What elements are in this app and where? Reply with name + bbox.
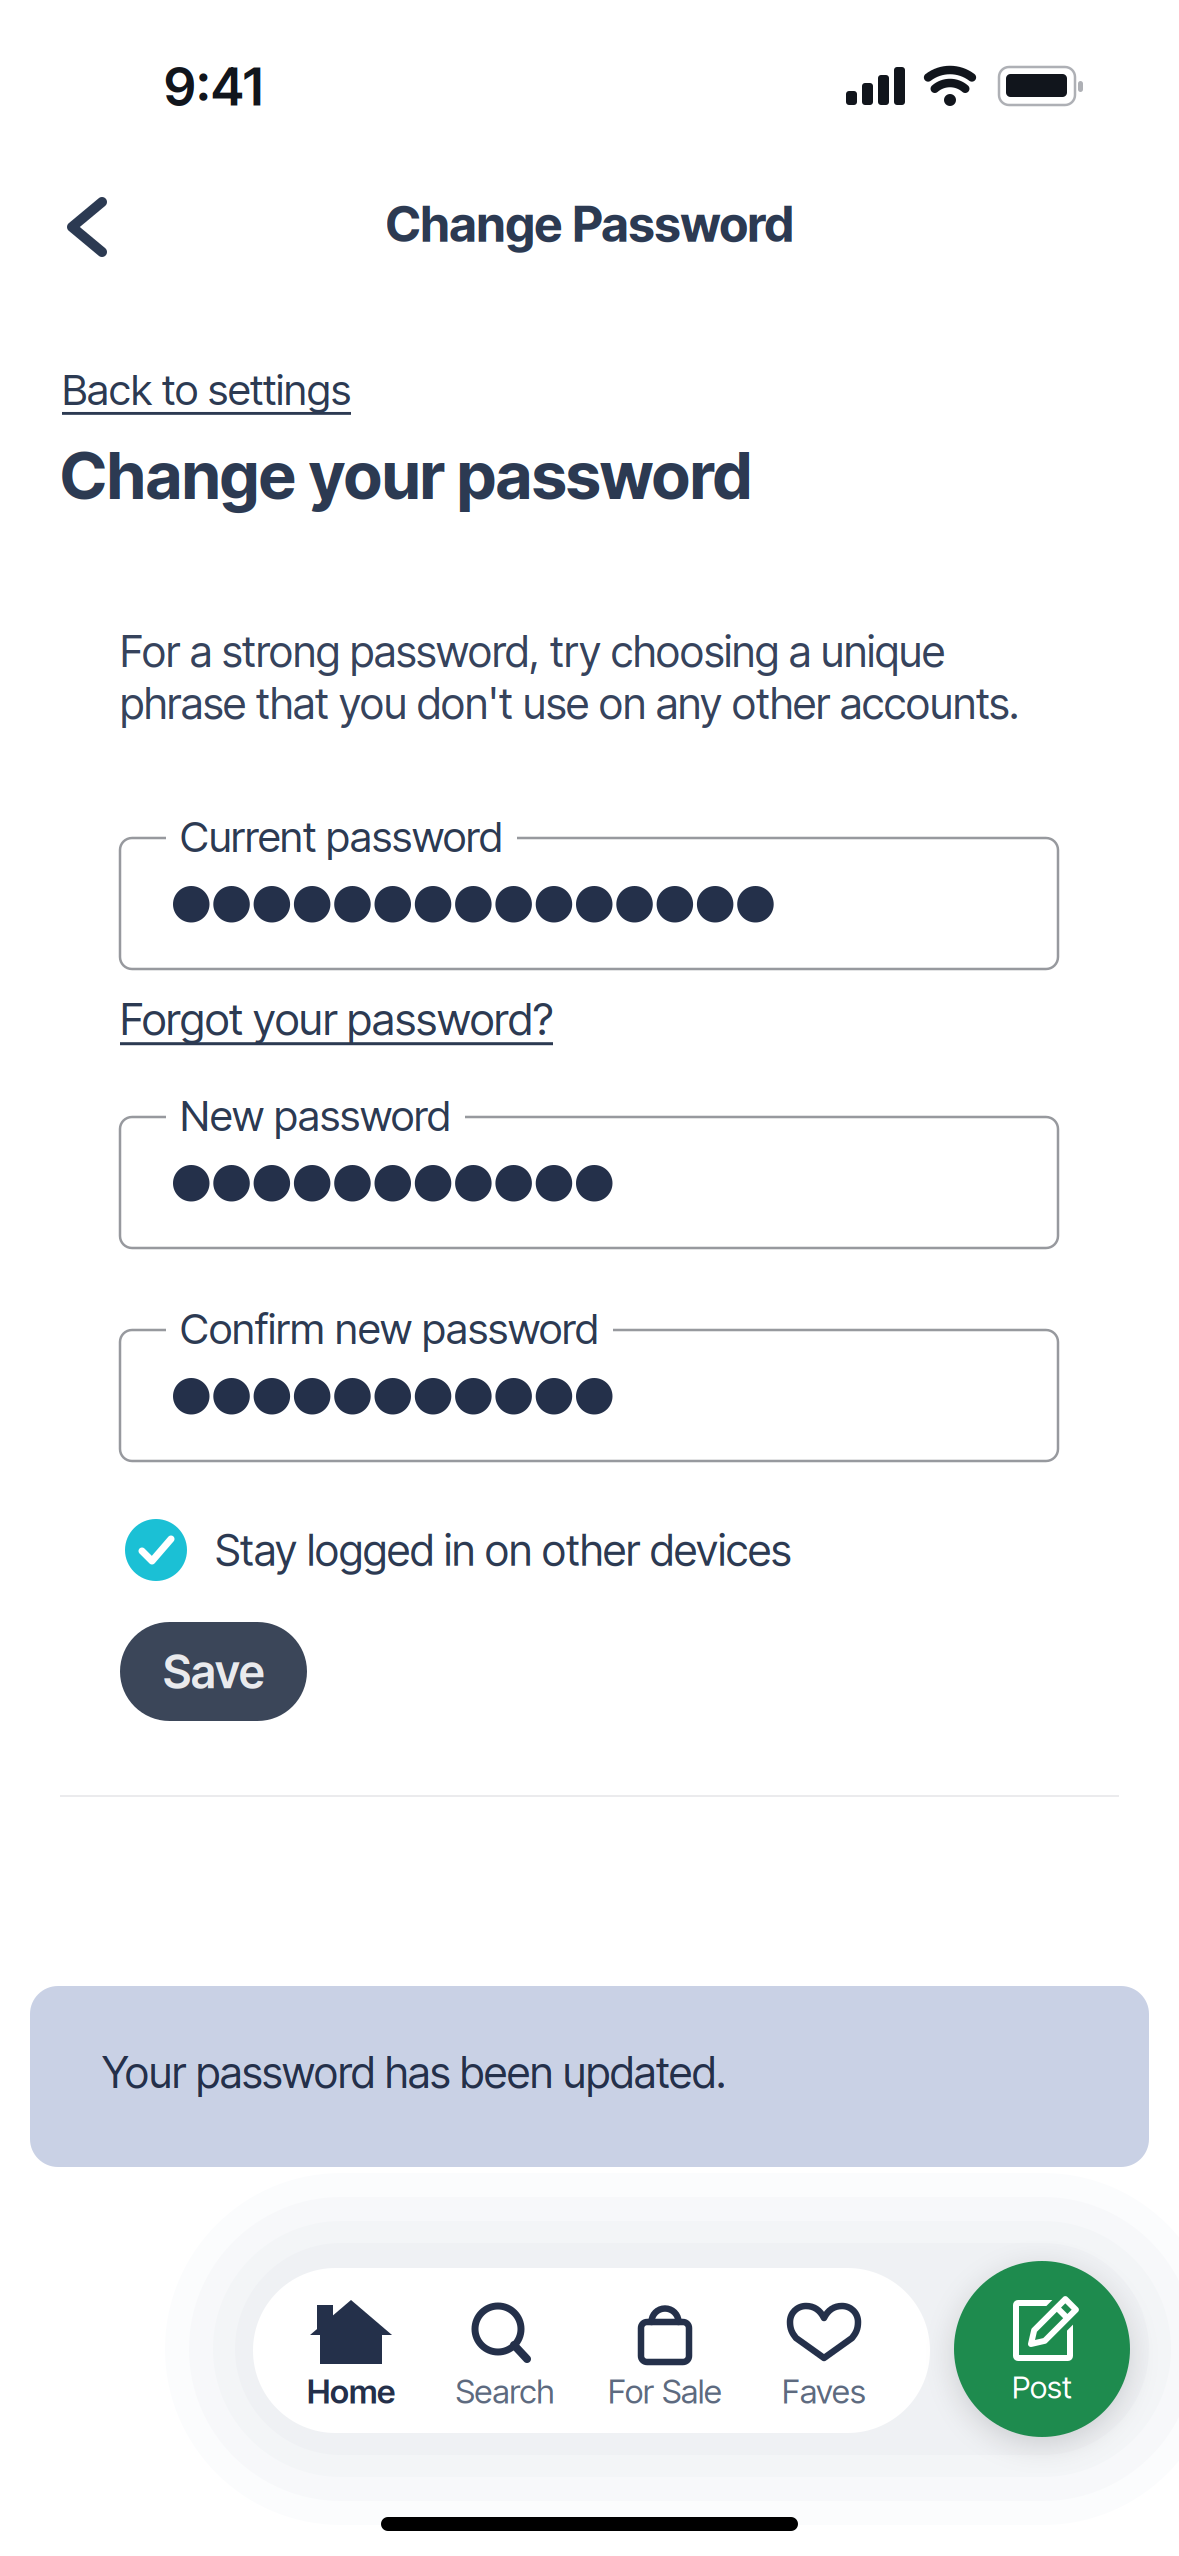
button[interactable]: Current password (120, 838, 1058, 969)
button[interactable]: Back to settings (62, 365, 351, 414)
staticText: Faves (782, 2372, 866, 2411)
staticText: Search (455, 2372, 554, 2411)
button[interactable]: New password (120, 1117, 1058, 1248)
staticText: Change your password (60, 437, 752, 514)
staticText: Home (307, 2372, 395, 2411)
button[interactable]: Back (66, 198, 110, 256)
button[interactable]: Stay logged in on other devices (125, 1519, 791, 1581)
staticText: phrase that you don't use on any other a… (120, 678, 1019, 729)
staticText: 9:41 (164, 56, 263, 117)
staticText: For Sale (608, 2372, 722, 2411)
staticText: Save (163, 1644, 264, 1699)
button[interactable]: Faves (749, 2300, 899, 2411)
staticText: Confirm new password (180, 1304, 599, 1353)
staticText: Back to settings (62, 365, 351, 414)
button[interactable]: Forgot your password? (120, 993, 553, 1045)
staticText: Stay logged in on other devices (215, 1525, 791, 1575)
button[interactable]: For Sale (590, 2300, 740, 2411)
staticText: New password (180, 1091, 451, 1140)
button[interactable]: Confirm new password (120, 1330, 1058, 1461)
staticText: Your password has been updated. (102, 2047, 726, 2098)
staticText: For a strong password, try choosing a un… (120, 626, 945, 677)
button[interactable]: Save (120, 1622, 307, 1721)
button[interactable]: Post (954, 2261, 1130, 2437)
button[interactable]: Search (430, 2300, 580, 2411)
staticText: Post (1012, 2369, 1072, 2406)
staticText: Current password (180, 812, 503, 861)
staticText: Forgot your password? (120, 993, 553, 1045)
staticText: Change Password (385, 195, 793, 253)
button[interactable]: Home (276, 2300, 426, 2411)
